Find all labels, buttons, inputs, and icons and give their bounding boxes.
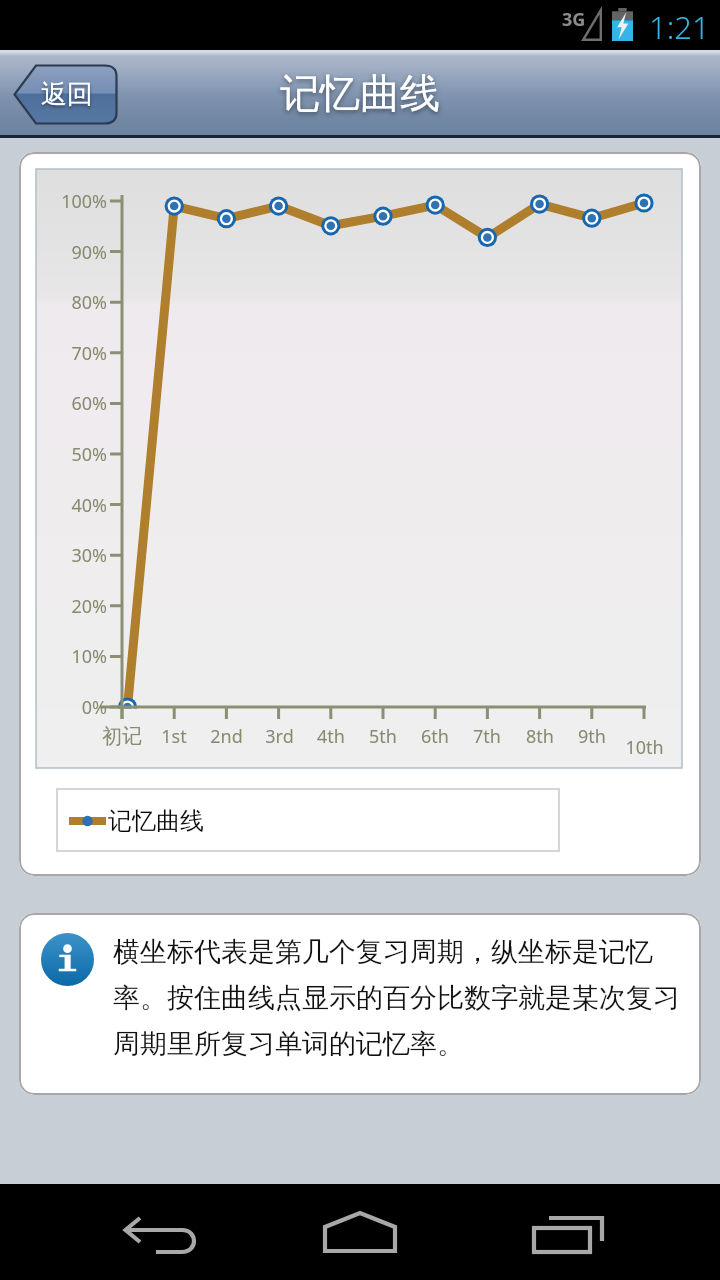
- staticText: 4th: [317, 724, 345, 749]
- staticText: 2nd: [210, 724, 243, 749]
- staticText: 90%: [71, 240, 107, 265]
- button[interactable]: Recent apps: [513, 1184, 623, 1280]
- button[interactable]: Home: [305, 1184, 415, 1280]
- staticText: 记忆曲线: [108, 806, 204, 836]
- staticText: 初记: [102, 724, 142, 749]
- staticText: 80%: [71, 290, 107, 315]
- staticText: 60%: [71, 391, 107, 416]
- staticText: 50%: [71, 442, 107, 467]
- staticText: 1:21: [649, 6, 710, 48]
- button[interactable]: Back: [98, 1184, 208, 1280]
- staticText: 0%: [81, 695, 107, 720]
- staticText: 5th: [369, 724, 397, 749]
- staticText: 3rd: [265, 724, 294, 749]
- staticText: 20%: [71, 594, 107, 619]
- staticText: 返回: [41, 78, 93, 111]
- staticText: 1st: [161, 724, 187, 749]
- staticText: 横坐标代表是第几个复习周期，纵坐标是记忆率。按住曲线点显示的百分比数字就是某次复…: [113, 935, 688, 1061]
- staticText: 70%: [71, 341, 107, 366]
- staticText: 记忆曲线: [280, 68, 440, 118]
- staticText: 8th: [526, 724, 554, 749]
- staticText: 100%: [61, 189, 107, 214]
- staticText: 30%: [71, 543, 107, 568]
- staticText: 10%: [71, 644, 107, 669]
- staticText: 6th: [421, 724, 449, 749]
- staticText: 9th: [578, 724, 606, 749]
- button[interactable]: 返回: [13, 64, 118, 125]
- staticText: 3G: [562, 7, 586, 32]
- staticText: 10th: [625, 735, 664, 760]
- staticText: 7th: [473, 724, 501, 749]
- staticText: 40%: [71, 493, 107, 518]
